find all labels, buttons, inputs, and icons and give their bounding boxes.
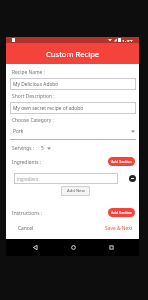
button[interactable]: Save & Next bbox=[103, 223, 135, 234]
staticText: My Delicious Adobo bbox=[13, 81, 59, 88]
staticText: Save & Next bbox=[105, 225, 133, 232]
button[interactable]: Pork bbox=[10, 124, 136, 138]
staticText: Pork bbox=[13, 128, 24, 135]
button[interactable]: Back bbox=[32, 244, 39, 251]
staticText: Cancel bbox=[18, 225, 34, 232]
button[interactable]: Recents bbox=[108, 244, 115, 251]
button[interactable]: My own secret recipe of adobo bbox=[13, 102, 136, 114]
staticText: Custom Recipe bbox=[46, 49, 100, 59]
staticText: 5 bbox=[41, 145, 44, 152]
button[interactable]: Cancel bbox=[14, 223, 38, 234]
button[interactable]: My Delicious Adobo bbox=[13, 78, 136, 90]
staticText: Instructions : bbox=[12, 210, 43, 217]
staticText: Add Section bbox=[111, 159, 133, 164]
button[interactable]: Home bbox=[70, 244, 77, 251]
staticText: ingredient bbox=[17, 176, 39, 182]
staticText: My own secret recipe of adobo bbox=[13, 105, 84, 112]
button[interactable]: Add New bbox=[61, 186, 90, 196]
staticText: Short Description : bbox=[12, 93, 55, 100]
staticText: Ingredients : bbox=[12, 159, 42, 166]
button[interactable]: Add Section bbox=[108, 157, 135, 166]
staticText: Recipe Name : bbox=[12, 69, 45, 76]
button[interactable]: Add Section bbox=[108, 208, 135, 217]
staticText: Choose Category : bbox=[12, 117, 54, 124]
staticText: Add Section bbox=[111, 210, 133, 215]
staticText: Servings : bbox=[12, 145, 35, 152]
staticText: Add New bbox=[67, 188, 85, 194]
button[interactable]: Remove ingredient bbox=[129, 175, 136, 182]
staticText: 1:37 bbox=[122, 38, 133, 42]
